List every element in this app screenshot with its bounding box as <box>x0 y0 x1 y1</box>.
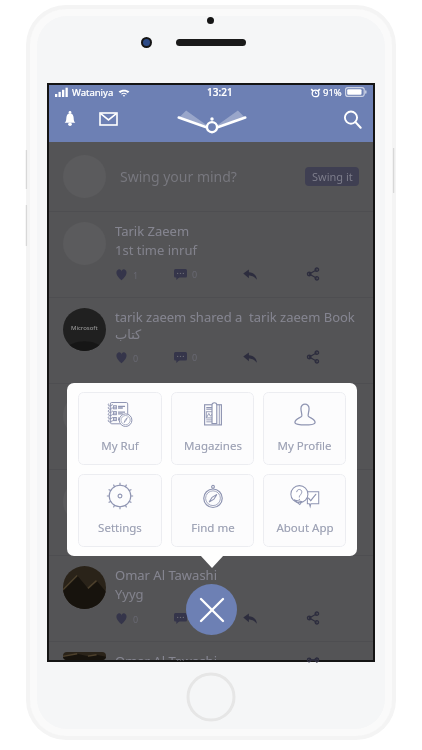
staticText: 1 <box>133 269 139 281</box>
staticText: post <box>115 413 142 431</box>
staticText: Swing it <box>312 169 353 184</box>
staticText: Tarik Zaeem <box>115 222 190 240</box>
staticText: 0 <box>192 440 198 452</box>
button[interactable]: Share <box>307 266 347 282</box>
button[interactable]: Like <box>115 349 174 365</box>
button[interactable]: Search <box>337 104 367 134</box>
button[interactable]: Reply <box>243 438 307 454</box>
button[interactable]: Comment <box>174 524 243 540</box>
button[interactable]: Settings <box>78 474 162 547</box>
button[interactable]: Reply <box>243 610 307 626</box>
staticText: 0 <box>133 441 139 453</box>
staticText: Settings <box>98 520 142 536</box>
staticText: Yyyg <box>115 585 144 603</box>
button[interactable]: Like <box>115 524 174 540</box>
button[interactable]: Share <box>307 524 347 540</box>
staticText: Swing your mind? <box>120 167 237 186</box>
button[interactable]: Like <box>115 266 174 282</box>
button[interactable]: Share <box>307 610 347 626</box>
staticText: Omar Al Tawashi <box>115 566 217 584</box>
button[interactable]: Find me <box>171 474 254 547</box>
button[interactable]: Share <box>307 349 347 365</box>
button[interactable]: Comment <box>174 438 243 454</box>
button[interactable]: Comment <box>174 349 243 365</box>
staticText: My Ruf <box>101 438 139 454</box>
staticText: Magazines <box>184 438 242 454</box>
button[interactable]: Reply <box>243 349 307 365</box>
button[interactable]: Like <box>115 610 174 626</box>
staticText: 0 <box>133 527 139 539</box>
staticText: 91% <box>323 86 342 99</box>
staticText: Omar Al Tawashi <box>115 652 217 660</box>
staticText: 0 <box>133 352 139 364</box>
staticText: tarik zaeem shared a tarik zaeem Book <box>115 308 355 326</box>
button[interactable]: Notifications <box>55 104 85 134</box>
button[interactable]: My Ruf <box>78 392 162 465</box>
staticText: Wataniya <box>72 86 114 99</box>
button[interactable]: Magazines <box>171 392 254 465</box>
button[interactable]: Reply <box>243 524 307 540</box>
staticText: 0 <box>192 526 198 538</box>
staticText: كتاب <box>115 327 142 342</box>
staticText: 0 <box>133 613 139 625</box>
staticText: About App <box>276 520 334 536</box>
button[interactable]: Messages <box>93 104 123 134</box>
button[interactable]: About App <box>263 474 346 547</box>
staticText: Tarik Zaeem <box>115 394 190 412</box>
button[interactable]: Swing it <box>305 167 359 186</box>
staticText: 13:21 <box>207 85 233 99</box>
staticText: Microsoft <box>71 324 98 332</box>
staticText: Tarik Zaeem <box>115 480 190 498</box>
staticText: post <box>115 499 142 517</box>
button[interactable]: Reply <box>243 266 307 282</box>
button[interactable]: Comment <box>174 610 243 626</box>
staticText: My Profile <box>277 438 332 454</box>
button[interactable]: Share <box>307 438 347 454</box>
staticText: 1st time inruf <box>115 241 197 259</box>
staticText: 0 <box>192 268 198 280</box>
button[interactable]: Like <box>115 438 174 454</box>
button[interactable]: Close menu <box>186 584 237 635</box>
button[interactable]: Comment <box>174 266 243 282</box>
staticText: 0 <box>192 351 198 363</box>
button[interactable]: My Profile <box>263 392 346 465</box>
staticText: Find me <box>191 520 235 536</box>
